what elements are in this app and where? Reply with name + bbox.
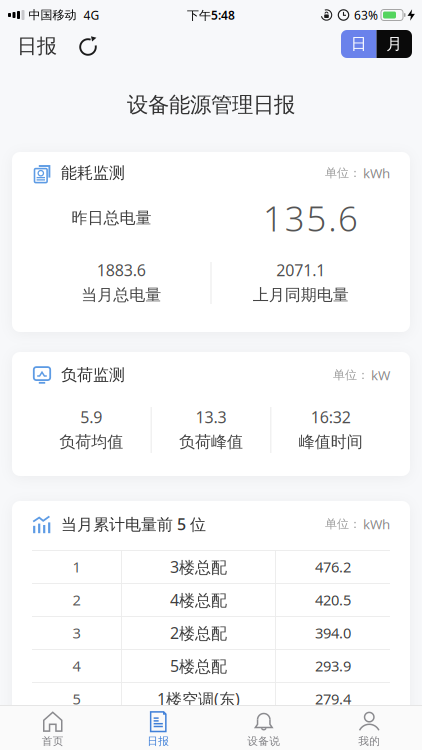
staticText: 昨日总电量 <box>71 208 151 228</box>
staticText: 4楼总配 <box>170 589 227 610</box>
button[interactable]: 日 <box>341 30 376 58</box>
staticText: 3 <box>72 623 80 643</box>
staticText: 1 <box>72 557 80 577</box>
staticText: 1楼空调(东) <box>157 688 240 709</box>
staticText: 16:32 <box>311 406 351 428</box>
staticText: 峰值时间 <box>299 432 363 452</box>
staticText: 负荷监测 <box>61 365 125 385</box>
staticText: 279.4 <box>315 689 351 709</box>
staticText: 负荷均值 <box>59 432 123 452</box>
staticText: 下午5:48 <box>187 7 235 23</box>
staticText: 135.6 <box>263 195 358 241</box>
staticText: 5.9 <box>80 406 102 428</box>
staticText: 当月总电量 <box>81 285 161 305</box>
staticText: 293.9 <box>315 656 351 676</box>
staticText: 负荷峰值 <box>179 432 243 452</box>
staticText: 5 <box>72 689 80 709</box>
staticText: kWh <box>363 164 390 182</box>
staticText: 394.0 <box>315 623 351 643</box>
staticText: 日报 <box>17 34 57 58</box>
staticText: 日 <box>351 34 367 54</box>
staticText: 2楼总配 <box>170 622 227 643</box>
staticText: 4 <box>72 656 80 676</box>
staticText: 首页 <box>42 735 64 748</box>
button[interactable]: 日报 <box>105 711 211 748</box>
staticText: 420.5 <box>315 590 351 610</box>
staticText: 63% <box>354 7 378 23</box>
button[interactable]: 首页 <box>0 711 105 748</box>
staticText: 我的 <box>358 735 380 748</box>
button[interactable]: 我的 <box>316 711 422 748</box>
button[interactable]: 刷新 <box>57 35 99 56</box>
staticText: 2071.1 <box>276 259 325 281</box>
button[interactable]: 设备说 <box>211 711 316 748</box>
button[interactable]: 月 <box>376 30 412 58</box>
staticText: 单位： <box>333 368 369 382</box>
staticText: 4G <box>83 7 99 23</box>
staticText: 能耗监测 <box>61 163 125 183</box>
staticText: 月 <box>386 34 402 54</box>
staticText: 1883.6 <box>97 259 146 281</box>
staticText: kW <box>371 366 390 384</box>
staticText: 设备说 <box>247 735 280 748</box>
staticText: 设备能源管理日报 <box>127 92 295 118</box>
staticText: 13.3 <box>195 406 226 428</box>
staticText: 上月同期电量 <box>253 285 349 305</box>
staticText: 5楼总配 <box>170 655 227 676</box>
staticText: 当月累计电量前 5 位 <box>61 513 206 535</box>
staticText: 2 <box>72 590 80 610</box>
staticText: 476.2 <box>315 557 351 577</box>
staticText: 单位： <box>325 517 361 531</box>
staticText: 日报 <box>147 735 169 748</box>
staticText: 3楼总配 <box>170 556 227 577</box>
staticText: 单位： <box>325 166 361 180</box>
staticText: 中国移动 <box>28 8 76 22</box>
staticText: kWh <box>363 515 390 533</box>
